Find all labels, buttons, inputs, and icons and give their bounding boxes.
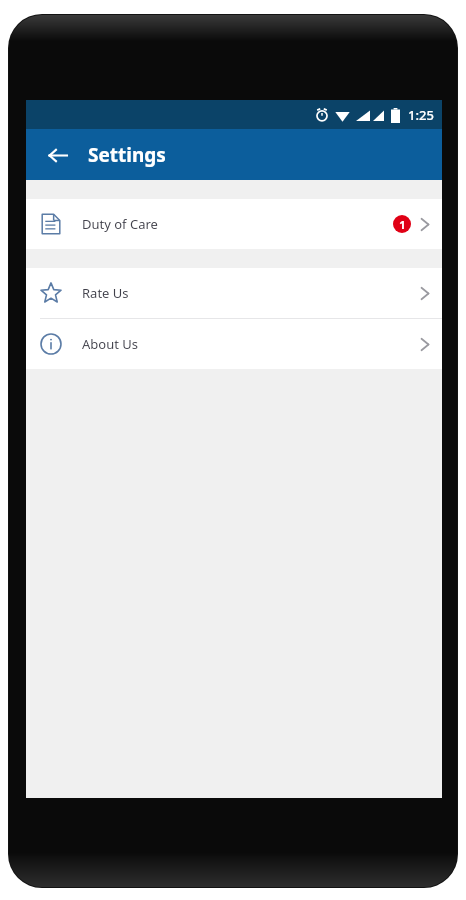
button[interactable]: Back: [42, 140, 72, 170]
button[interactable]: About Us: [26, 319, 442, 369]
staticText: Rate Us: [82, 284, 129, 302]
button[interactable]: Duty of Care: [26, 199, 442, 249]
staticText: 1: [399, 217, 406, 232]
staticText: Duty of Care: [82, 215, 158, 233]
staticText: About Us: [82, 335, 139, 353]
staticText: Settings: [88, 142, 166, 168]
staticText: 1:25: [408, 106, 434, 124]
button[interactable]: Rate Us: [26, 268, 442, 318]
